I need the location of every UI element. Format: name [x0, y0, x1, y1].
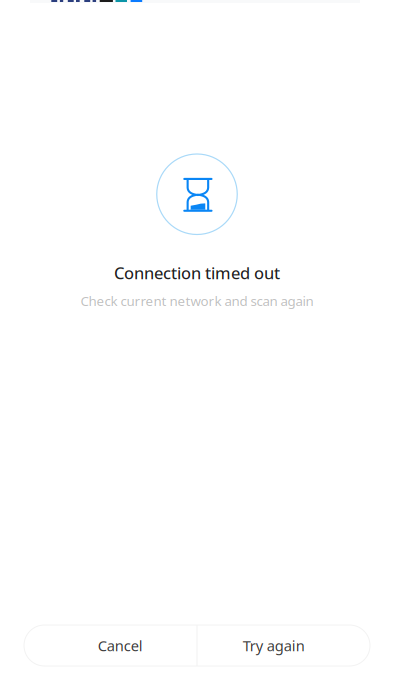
button[interactable]: Cancel [24, 625, 196, 666]
staticText: Check current network and scan again [80, 292, 313, 310]
staticText: Connection timed out [114, 261, 280, 284]
button[interactable]: Try again [197, 625, 370, 666]
staticText: Try again [243, 636, 305, 655]
staticText: Cancel [98, 636, 143, 655]
